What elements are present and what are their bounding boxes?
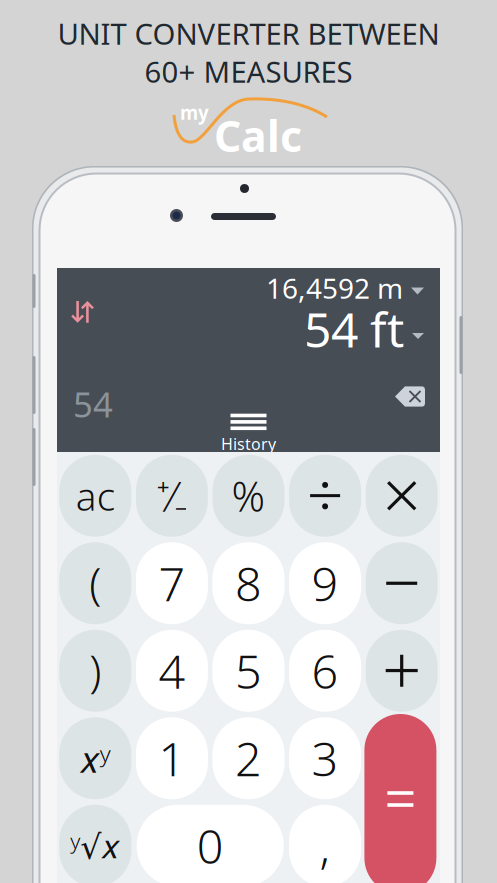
staticText: 3 [312, 727, 339, 789]
button[interactable]: History [218, 417, 278, 451]
staticText: ⁺⁄₋ [156, 468, 187, 523]
staticText: 7 [158, 552, 185, 614]
staticText: ( [89, 554, 101, 612]
staticText: 9 [312, 552, 339, 614]
button[interactable]: 54 ft [194, 306, 424, 352]
staticText: 16,4592 m [266, 269, 403, 307]
button[interactable]: Multiply [363, 452, 440, 539]
button[interactable]: , [287, 802, 363, 883]
staticText: History [221, 433, 276, 454]
button[interactable]: 0 [134, 802, 287, 883]
button[interactable]: ⁺⁄₋ [134, 452, 210, 539]
button[interactable]: 4 [134, 627, 210, 714]
button[interactable]: 9 [287, 539, 363, 627]
staticText: my [180, 100, 209, 125]
button[interactable]: Divide [287, 452, 363, 539]
button[interactable] [364, 714, 436, 883]
staticText: 𝑥ʸ [80, 734, 111, 782]
staticText: 1 [158, 727, 185, 789]
button[interactable]: 6 [287, 627, 363, 714]
staticText: ʸ√𝑥 [70, 824, 120, 868]
button[interactable]: ʸ√𝑥 [57, 802, 134, 883]
button[interactable]: ( [57, 539, 134, 627]
button[interactable]: 1 [134, 714, 210, 802]
staticText: , [320, 815, 331, 877]
button[interactable]: ac [57, 452, 134, 539]
staticText: Calc [214, 107, 302, 164]
staticText: 54 ft [304, 297, 404, 361]
button[interactable]: ) [57, 627, 134, 714]
staticText: ac [76, 470, 115, 521]
button[interactable]: 2 [210, 714, 287, 802]
button[interactable]: 5 [210, 627, 287, 714]
staticText: 4 [158, 640, 185, 702]
staticText: ) [89, 641, 101, 700]
staticText: 0 [197, 815, 224, 877]
button[interactable]: 16,4592 m [194, 273, 424, 303]
staticText: 8 [235, 552, 262, 614]
staticText: UNIT CONVERTER BETWEEN [57, 14, 439, 53]
staticText: 6 [312, 640, 339, 702]
button[interactable]: Delete [395, 386, 425, 407]
button[interactable]: 3 [287, 714, 363, 802]
button[interactable]: Plus [363, 627, 440, 714]
staticText: % [231, 468, 265, 523]
button[interactable]: 8 [210, 539, 287, 627]
button[interactable]: % [210, 452, 287, 539]
staticText: 2 [235, 727, 262, 789]
staticText: 54 [73, 381, 113, 427]
staticText: 5 [235, 640, 262, 702]
button[interactable]: 7 [134, 539, 210, 627]
button[interactable]: Minus [363, 539, 440, 627]
staticText: 60+ MEASURES [144, 52, 352, 91]
button[interactable]: 𝑥ʸ [57, 714, 134, 802]
